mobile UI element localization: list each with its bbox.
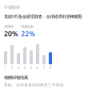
staticText: 美銀9月基金經理調查：全球經濟前景轉樂觀 bbox=[4, 13, 82, 19]
staticText: 美銀：全球衰退預期降至三年新低 bbox=[4, 83, 64, 87]
staticText: 6 bbox=[37, 66, 39, 70]
staticText: 8 bbox=[49, 66, 51, 70]
staticText: 相關研報推薦 bbox=[4, 75, 28, 80]
staticText: 20% bbox=[4, 29, 18, 38]
staticText: 市場觀察 bbox=[4, 5, 20, 10]
staticText: 4 bbox=[24, 66, 26, 70]
staticText: 7 bbox=[43, 66, 45, 70]
staticText: 淨增持 bbox=[4, 24, 13, 29]
staticText: 3 bbox=[17, 66, 19, 70]
staticText: 5 bbox=[30, 66, 32, 70]
staticText: 1 bbox=[5, 66, 7, 70]
staticText: 現金比例 bbox=[21, 24, 33, 29]
staticText: 22% bbox=[21, 29, 35, 38]
staticText: 2 bbox=[11, 66, 13, 70]
